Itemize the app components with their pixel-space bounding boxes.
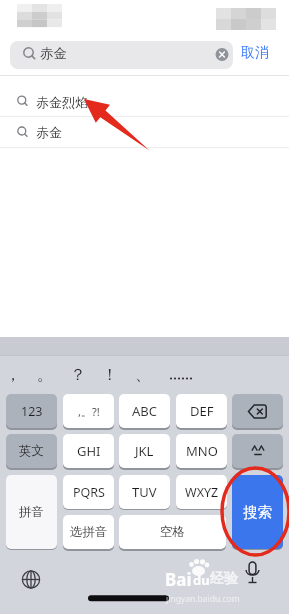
staticText: 赤金烈焰	[36, 94, 88, 110]
staticText: 赤金	[40, 45, 67, 62]
button[interactable]	[0, 117, 289, 148]
staticText: 搜索	[243, 503, 272, 521]
button[interactable]: 空格	[119, 515, 226, 549]
button[interactable]: JKL	[119, 434, 170, 468]
staticText: 空格	[160, 524, 185, 540]
button[interactable]	[17, 565, 45, 593]
staticText: ,。?!	[78, 404, 100, 419]
button[interactable]: TUV	[119, 475, 170, 509]
button[interactable]	[0, 76, 289, 116]
button[interactable]: MNO	[176, 434, 227, 468]
button[interactable]: GHI	[63, 434, 114, 468]
button[interactable]	[10, 41, 233, 69]
staticText: MNO	[186, 442, 218, 460]
button[interactable]: 选拼音	[63, 515, 114, 549]
staticText: ，	[5, 365, 21, 385]
button[interactable]: 搜索	[232, 475, 283, 549]
staticText: Bai	[165, 568, 192, 591]
staticText: 123	[21, 403, 43, 420]
staticText: 、	[135, 365, 151, 385]
staticText: 经验	[210, 570, 238, 588]
staticText: 。	[37, 365, 53, 385]
button[interactable]	[232, 394, 283, 428]
button[interactable]	[232, 434, 283, 468]
staticText: 取消	[241, 44, 269, 62]
staticText: 选拼音	[70, 524, 108, 540]
button[interactable]: WXYZ	[176, 475, 227, 509]
button[interactable]: ,。?!	[63, 394, 114, 428]
staticText: TUV	[132, 483, 157, 501]
staticText: du	[193, 571, 210, 589]
staticText: DEF	[190, 402, 214, 420]
staticText: 拼音	[19, 504, 44, 520]
button[interactable]: DEF	[176, 394, 227, 428]
button[interactable]: 取消	[195, 41, 289, 65]
button[interactable]: ABC	[119, 394, 170, 428]
staticText: GHI	[77, 442, 101, 460]
button[interactable]: 英文	[6, 434, 57, 468]
staticText: ABC	[132, 402, 157, 420]
staticText: PQRS	[73, 484, 105, 501]
staticText: JKL	[135, 442, 154, 460]
button[interactable]: PQRS	[63, 475, 114, 509]
button[interactable]: 拼音	[6, 475, 57, 549]
button[interactable]	[239, 559, 266, 587]
staticText: ？	[70, 365, 86, 385]
staticText: 英文	[19, 443, 44, 459]
staticText: ！	[102, 365, 118, 385]
button[interactable]: 123	[6, 394, 57, 428]
staticText: 赤金	[36, 124, 62, 140]
staticText: WXYZ	[185, 484, 219, 501]
staticText: jingyan.baidu.com	[166, 593, 240, 605]
